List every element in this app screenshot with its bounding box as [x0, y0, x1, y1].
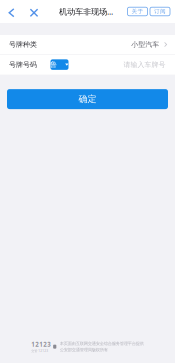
- staticText: 确定: [78, 93, 96, 105]
- button[interactable]: 选择省份简称: [50, 59, 68, 70]
- button[interactable]: 关于: [127, 7, 147, 16]
- staticText: 号牌种类: [9, 40, 37, 49]
- button[interactable]: 订阅: [150, 7, 170, 16]
- staticText: 小型汽车: [131, 40, 159, 49]
- staticText: 12123: [31, 340, 51, 349]
- staticText: 本页面由互联网交通安全综合服务管理平台提供: [60, 341, 144, 346]
- button[interactable]: 号牌种类: [0, 35, 175, 54]
- staticText: 公安部交通管理局版权所有: [60, 347, 108, 352]
- staticText: 请输入车牌号: [123, 60, 165, 69]
- button[interactable]: 返回: [0, 0, 23, 24]
- staticText: 鲁: [50, 60, 57, 69]
- staticText: 号牌号码: [9, 60, 37, 69]
- staticText: 关于: [131, 8, 143, 15]
- staticText: 订阅: [154, 8, 166, 15]
- button[interactable]: 关闭: [23, 0, 45, 24]
- staticText: 交管 12123: [31, 349, 48, 353]
- button[interactable]: 确定: [0, 89, 175, 109]
- staticText: 机动车非现场...: [59, 6, 113, 17]
